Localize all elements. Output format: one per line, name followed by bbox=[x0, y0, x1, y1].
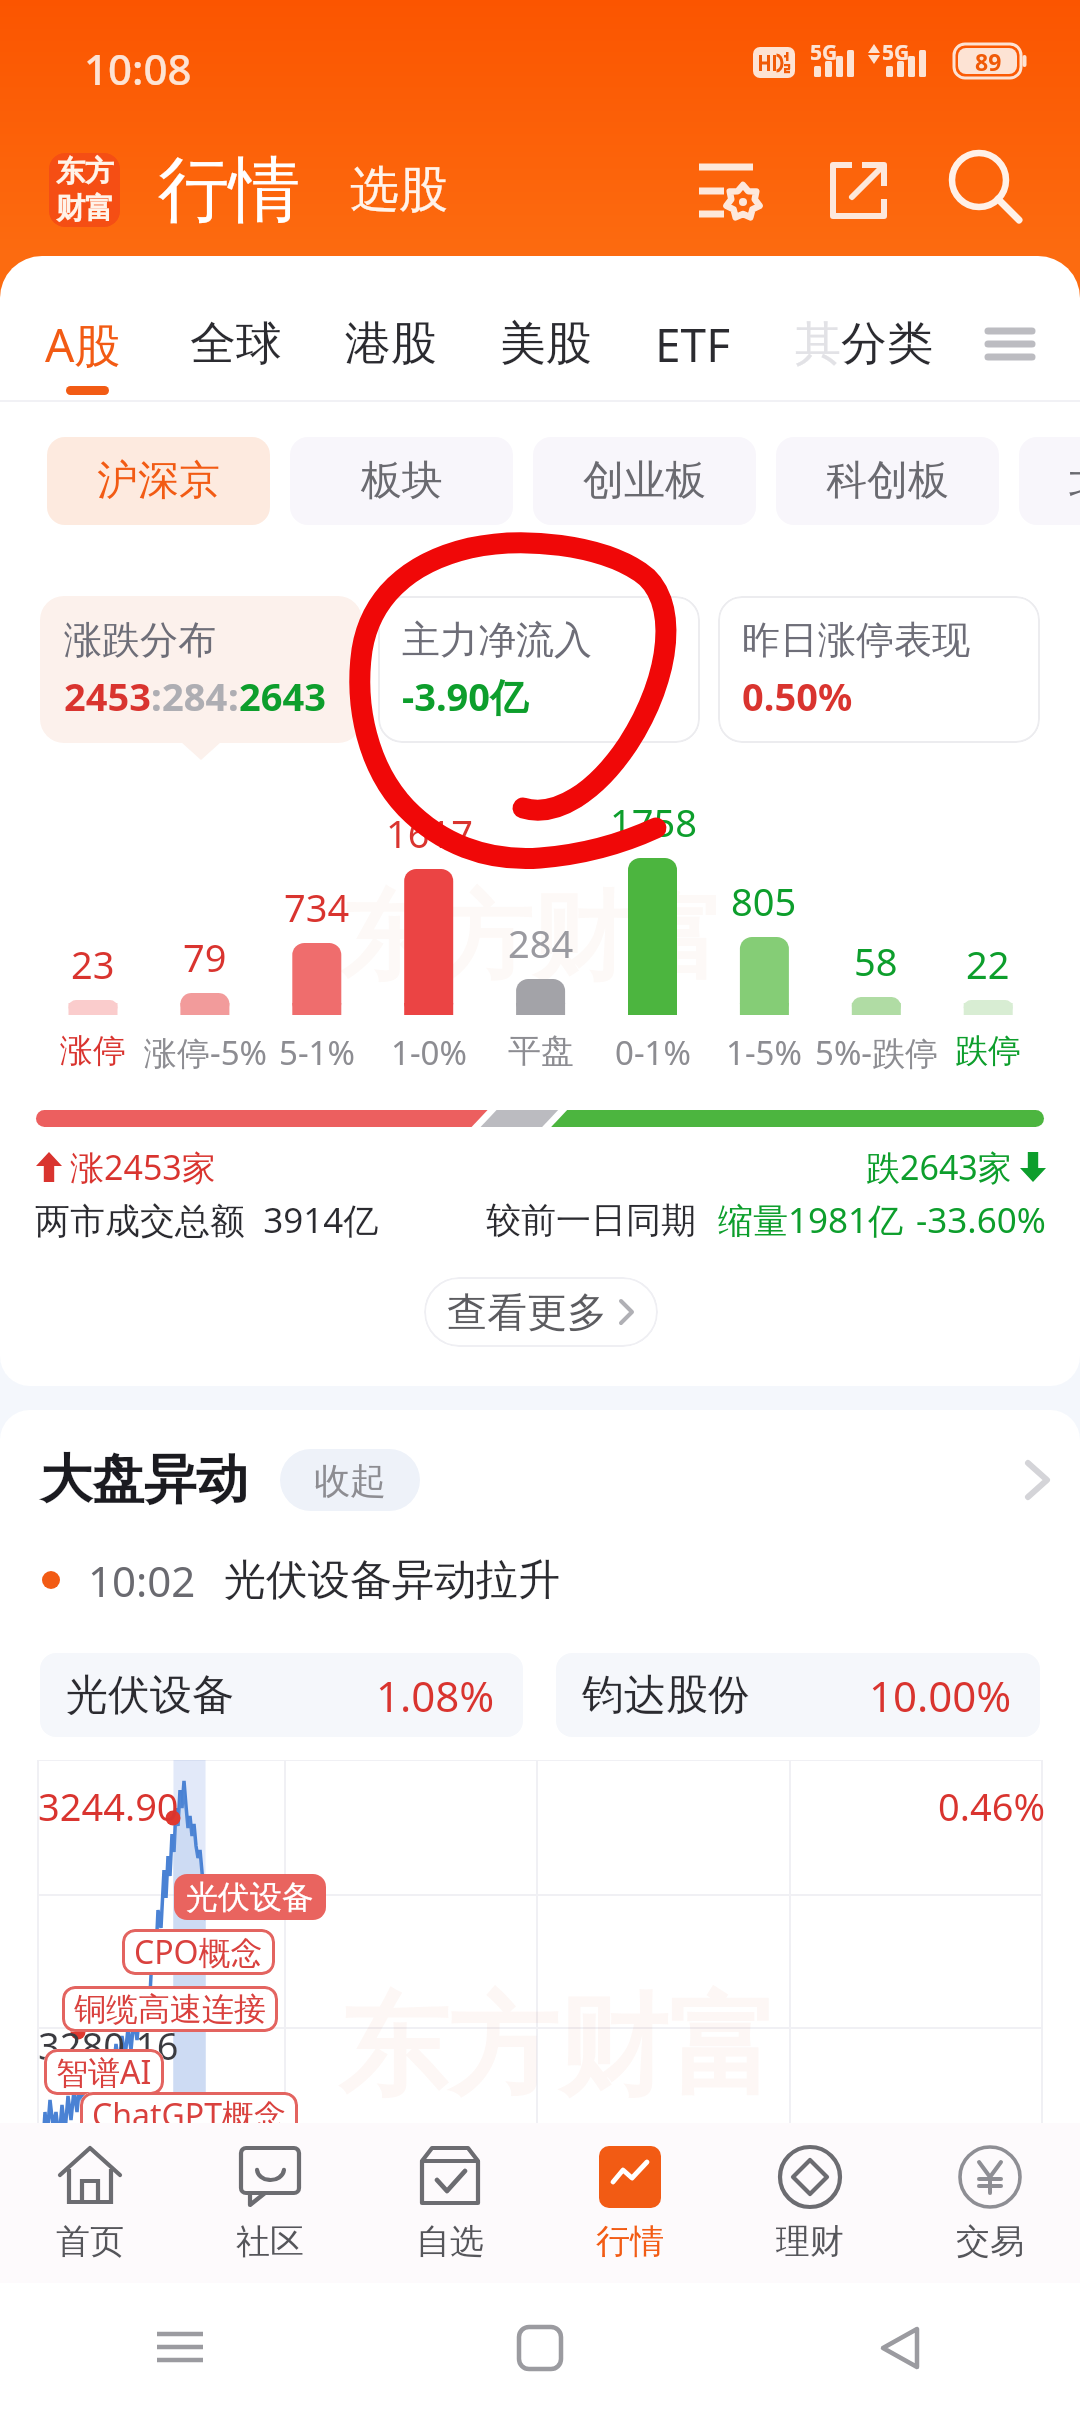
staticText: 较前一日同期 bbox=[486, 1198, 696, 1242]
button[interactable]: A股 bbox=[45, 286, 121, 402]
button[interactable]: 科创板 bbox=[776, 437, 999, 525]
staticText: 东方 bbox=[56, 153, 114, 190]
staticText: 5%-跌停 bbox=[815, 1030, 938, 1075]
staticText: 美股 bbox=[500, 315, 592, 373]
button[interactable]: 其 bbox=[795, 286, 933, 402]
staticText: 昨日涨停表现 bbox=[742, 616, 970, 664]
staticText: 铜缆高速连接 bbox=[74, 1989, 266, 2029]
staticText: 5G bbox=[882, 38, 910, 67]
button[interactable]: 理财 bbox=[720, 2123, 900, 2283]
button[interactable]: 创业板 bbox=[533, 437, 756, 525]
staticText: 805 bbox=[731, 875, 797, 927]
staticText: 10:02 bbox=[88, 1552, 196, 1609]
staticText: 0.50% bbox=[742, 670, 853, 722]
staticText: 主力净流入 bbox=[402, 616, 592, 664]
staticText: 缩量1981亿 bbox=[718, 1196, 904, 1244]
staticText: 两市成交总额 3914亿 bbox=[35, 1196, 379, 1244]
button[interactable]: Back bbox=[720, 2283, 1080, 2412]
staticText: 创业板 bbox=[583, 455, 706, 507]
staticText: 涨停-5% bbox=[144, 1030, 267, 1075]
button[interactable]: 港股 bbox=[345, 286, 437, 402]
button[interactable]: Share bbox=[798, 124, 918, 256]
button[interactable]: 查看更多 bbox=[424, 1277, 658, 1347]
staticText: 79 bbox=[183, 931, 227, 983]
staticText: 1758 bbox=[610, 796, 697, 848]
staticText: 北交所 bbox=[1069, 455, 1080, 507]
button[interactable]: ChatGPT概念 bbox=[80, 2092, 298, 2123]
button[interactable]: 收起 bbox=[280, 1449, 420, 1511]
staticText: 科创板 bbox=[826, 455, 949, 507]
button[interactable]: 板块 bbox=[290, 437, 513, 525]
staticText: 理财 bbox=[776, 2220, 844, 2263]
staticText: 89 bbox=[975, 46, 1002, 77]
button[interactable]: 行情 bbox=[540, 2123, 720, 2283]
button[interactable]: Recent apps bbox=[0, 2283, 360, 2412]
staticText: 光伏设备异动拉升 bbox=[224, 1554, 560, 1607]
staticText: 东方财富 bbox=[338, 1978, 778, 2117]
button[interactable]: All categories bbox=[960, 286, 1060, 402]
staticText: 1-5% bbox=[726, 1030, 802, 1075]
staticText: 2643 bbox=[239, 670, 326, 722]
staticText: 3280.16 bbox=[38, 2019, 179, 2071]
staticText: 港股 bbox=[345, 315, 437, 373]
staticText: 其 bbox=[795, 315, 841, 373]
staticText: 钧达股份 bbox=[582, 1669, 750, 1722]
button[interactable]: 主力净流入 bbox=[378, 596, 700, 743]
staticText: 2453 bbox=[64, 670, 151, 722]
staticText: 平盘 bbox=[508, 1030, 574, 1072]
staticText: 选股 bbox=[350, 159, 448, 221]
staticText: 5-1% bbox=[279, 1030, 355, 1075]
staticText: -3.90亿 bbox=[402, 670, 529, 722]
button[interactable]: 铜缆高速连接 bbox=[62, 1986, 278, 2032]
staticText: 分类 bbox=[841, 315, 933, 373]
button[interactable]: 光伏设备 bbox=[40, 1653, 523, 1737]
staticText: 涨跌分布 bbox=[64, 616, 216, 664]
staticText: 跌2643家 bbox=[866, 1144, 1012, 1190]
staticText: 东方财富 bbox=[340, 878, 724, 999]
staticText: 5G bbox=[810, 38, 838, 67]
button[interactable]: 北交所 bbox=[1019, 437, 1080, 525]
staticText: 首页 bbox=[56, 2220, 124, 2263]
button[interactable]: 美股 bbox=[500, 286, 592, 402]
button[interactable]: Home bbox=[360, 2283, 720, 2412]
button[interactable]: 全球 bbox=[190, 286, 282, 402]
button[interactable]: 10:02 bbox=[42, 1535, 1080, 1625]
button[interactable]: 交易 bbox=[900, 2123, 1080, 2283]
staticText: 自选 bbox=[416, 2220, 484, 2263]
button[interactable]: ETF bbox=[655, 286, 731, 402]
button[interactable]: 光伏设备 bbox=[174, 1874, 326, 1920]
staticText: 10.00% bbox=[869, 1667, 1012, 1724]
button[interactable]: 钧达股份 bbox=[556, 1653, 1040, 1737]
button[interactable]: 涨跌分布 bbox=[40, 596, 362, 743]
staticText: 涨2453家 bbox=[70, 1144, 216, 1190]
button[interactable]: 社区 bbox=[180, 2123, 360, 2283]
button[interactable]: 首页 bbox=[0, 2123, 180, 2283]
staticText: 0.46% bbox=[938, 1780, 1045, 1832]
staticText: 光伏设备 bbox=[66, 1669, 234, 1722]
button[interactable]: East Money logo bbox=[49, 153, 120, 227]
staticText: 涨停 bbox=[60, 1030, 126, 1072]
button[interactable]: CPO概念 bbox=[122, 1929, 275, 1975]
staticText: 查看更多 bbox=[447, 1287, 607, 1337]
button[interactable]: 智谱AI bbox=[44, 2049, 164, 2095]
staticText: 734 bbox=[284, 881, 350, 933]
button[interactable]: 自选 bbox=[360, 2123, 540, 2283]
button[interactable]: Search bbox=[927, 124, 1047, 256]
staticText: : bbox=[151, 670, 162, 722]
staticText: 23 bbox=[71, 938, 115, 990]
staticText: 收起 bbox=[314, 1458, 386, 1503]
staticText: 284 bbox=[162, 670, 228, 722]
staticText: -33.60% bbox=[916, 1196, 1046, 1244]
button[interactable]: 大盘异动 bbox=[0, 1425, 1080, 1535]
staticText: 智谱AI bbox=[56, 2050, 152, 2094]
button[interactable]: Filter settings bbox=[666, 124, 786, 256]
button[interactable]: 昨日涨停表现 bbox=[718, 596, 1040, 743]
staticText: ChatGPT概念 bbox=[92, 2093, 286, 2123]
staticText: 58 bbox=[854, 935, 898, 987]
staticText: 行情 bbox=[596, 2220, 664, 2263]
button[interactable]: 沪深京 bbox=[47, 437, 270, 525]
staticText: 板块 bbox=[361, 455, 443, 507]
staticText: 1-0% bbox=[391, 1030, 467, 1075]
staticText: 0-1% bbox=[615, 1030, 691, 1075]
staticText: 社区 bbox=[236, 2220, 304, 2263]
